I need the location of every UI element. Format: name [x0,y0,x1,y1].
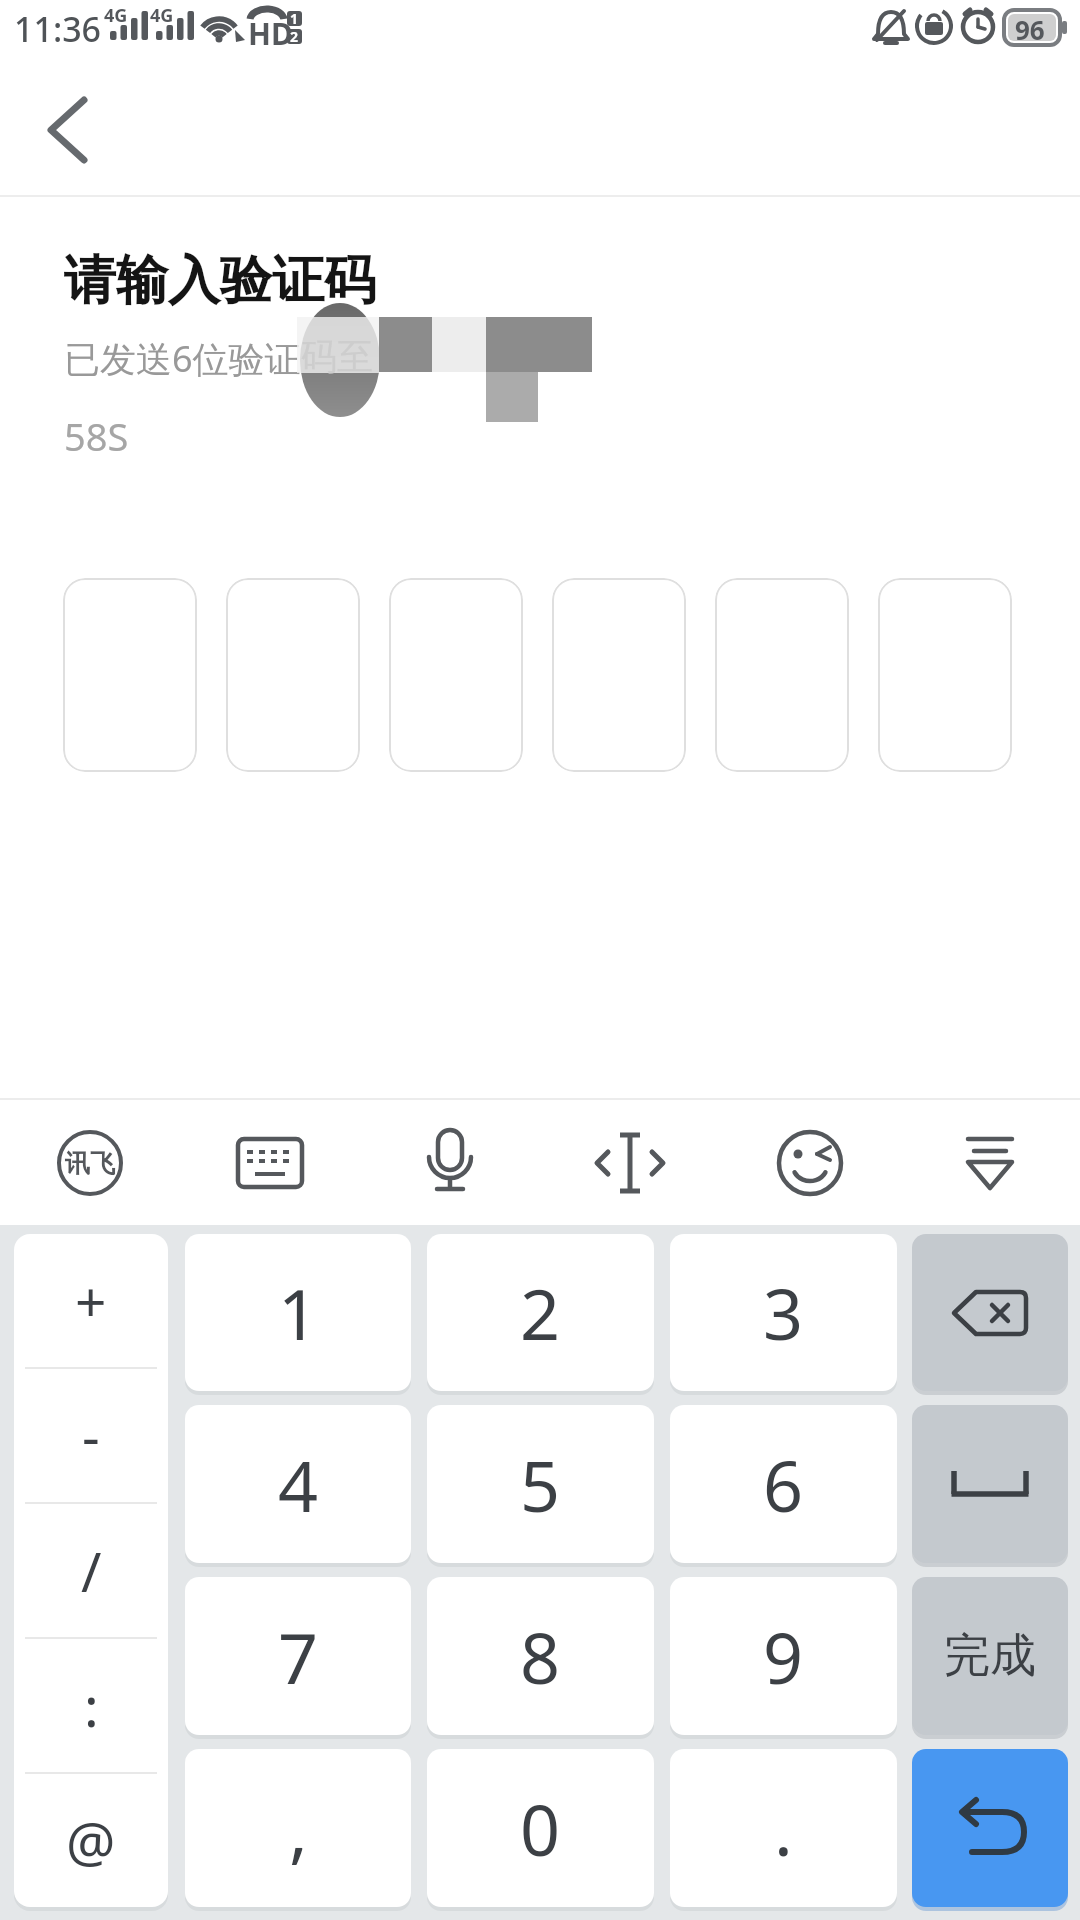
staticText: 5 [520,1437,561,1532]
staticText: @ [66,1803,116,1878]
button[interactable]: 2 [427,1234,654,1391]
staticText: . [774,1781,793,1876]
staticText: - [82,1398,100,1473]
staticText: 8 [520,1609,561,1704]
staticText: 96 [1015,12,1045,47]
button[interactable]: 讯飞 [0,1100,180,1225]
button[interactable]: + [14,1234,168,1367]
staticText: 6 [763,1437,804,1532]
button[interactable] [552,578,686,772]
button[interactable] [389,578,523,772]
staticText: 0 [520,1781,561,1876]
button[interactable]: 0 [427,1749,654,1907]
button[interactable]: . [670,1749,897,1907]
button[interactable]: 3 [670,1234,897,1391]
staticText: 4G [104,3,128,28]
button[interactable]: 9 [670,1577,897,1735]
button[interactable] [540,1100,720,1225]
staticText: : [84,1668,99,1743]
button[interactable]: @ [14,1774,168,1907]
staticText: 已发送6位验证码至 [64,334,373,383]
button[interactable]: , [185,1749,411,1907]
staticText: 1 [290,9,299,28]
button[interactable] [180,1100,360,1225]
staticText: 58S [64,410,129,462]
button[interactable] [912,1405,1068,1563]
button[interactable] [715,578,849,772]
staticText: / [81,1533,102,1608]
button[interactable] [912,1749,1068,1907]
staticText: 11:36 [14,6,102,52]
button[interactable] [63,578,197,772]
button[interactable] [900,1100,1080,1225]
button[interactable]: 7 [185,1577,411,1735]
staticText: 9 [763,1609,804,1704]
button[interactable] [720,1100,900,1225]
staticText: 2 [520,1265,561,1360]
button[interactable]: 5 [427,1405,654,1563]
button[interactable] [22,85,112,175]
staticText: 7 [278,1609,319,1704]
staticText: HD [248,13,293,54]
button[interactable] [912,1234,1068,1391]
staticText: + [75,1263,107,1338]
staticText: 3 [763,1265,804,1360]
staticText: , [289,1781,308,1876]
button[interactable]: 完成 [912,1577,1068,1735]
button[interactable] [226,578,360,772]
staticText: 码至 [301,334,373,379]
staticText: 4G [150,3,174,28]
button[interactable] [878,578,1012,772]
button[interactable]: 8 [427,1577,654,1735]
button[interactable]: - [14,1369,168,1502]
staticText: 完成 [944,1627,1036,1685]
staticText: 2 [290,27,299,46]
staticText: 1 [278,1265,319,1360]
button[interactable]: 6 [670,1405,897,1563]
staticText: 4 [278,1437,319,1532]
button[interactable]: / [14,1504,168,1637]
button[interactable]: : [14,1639,168,1772]
staticText: 请输入验证码 [64,248,376,314]
staticText: 讯飞 [65,1148,115,1179]
button[interactable]: 1 [185,1234,411,1391]
button[interactable]: 4 [185,1405,411,1563]
button[interactable] [360,1100,540,1225]
